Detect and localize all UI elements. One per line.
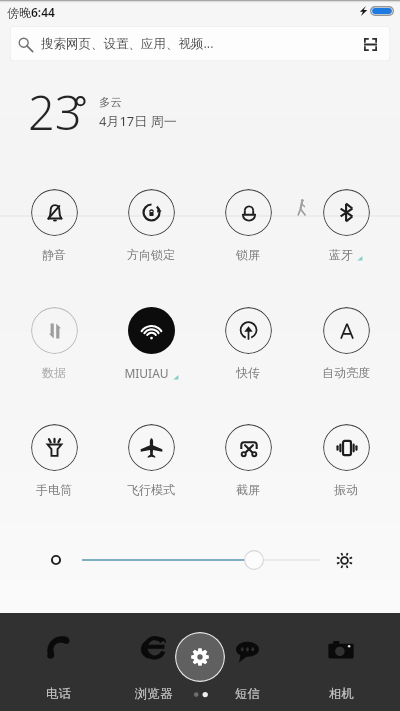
staticText: 相机 [329,686,354,702]
button[interactable]: 手电筒 [8,424,100,502]
staticText: 截屏 [236,482,260,497]
staticText: 多云 [99,95,122,109]
staticText: 振动 [334,482,358,497]
staticText: 手电筒 [36,482,72,497]
staticText: 锁屏 [236,247,260,262]
staticText: 快传 [236,365,260,380]
staticText: 蓝牙 [329,247,353,262]
staticText: 23 [28,80,82,144]
staticText: 浏览器 [135,686,173,702]
button[interactable]: 浏览器 [116,613,192,711]
button[interactable]: 蓝牙 [300,189,392,267]
button[interactable]: 自动亮度 [300,307,392,385]
button[interactable]: 截屏 [202,424,294,502]
button[interactable]: Scan code [359,33,381,55]
button[interactable]: 短信 [209,613,285,711]
button[interactable]: 静音 [8,189,100,267]
staticText: 静音 [42,247,66,262]
button[interactable]: Maximum brightness [336,552,353,569]
staticText: 方向锁定 [127,247,175,262]
staticText: 搜索网页、设置、应用、视频... [41,35,214,52]
button[interactable]: 快传 [202,307,294,385]
button[interactable]: 振动 [300,424,392,502]
staticText: 4月17日 周一 [99,112,177,130]
button[interactable]: Minimum brightness [48,552,64,568]
button[interactable]: 相机 [303,613,379,711]
button[interactable]: MIUIAU [105,307,197,385]
button[interactable]: 搜索网页、设置、应用、视频... [10,26,390,61]
button[interactable]: 方向锁定 [105,189,197,267]
button[interactable]: 锁屏 [202,189,294,267]
staticText: 数据 [42,365,66,380]
staticText: MIUIAU [124,365,169,381]
button[interactable]: 电话 [20,613,96,711]
staticText: 电话 [46,686,71,702]
button[interactable]: Settings [175,632,225,682]
button[interactable]: 数据 [8,307,100,385]
button[interactable]: 飞行模式 [105,424,197,502]
staticText: 傍晚6:44 [7,4,55,20]
button[interactable]: Brightness slider [82,546,320,574]
staticText: 飞行模式 [127,482,175,497]
staticText: 短信 [235,686,260,702]
staticText: 自动亮度 [322,365,370,380]
